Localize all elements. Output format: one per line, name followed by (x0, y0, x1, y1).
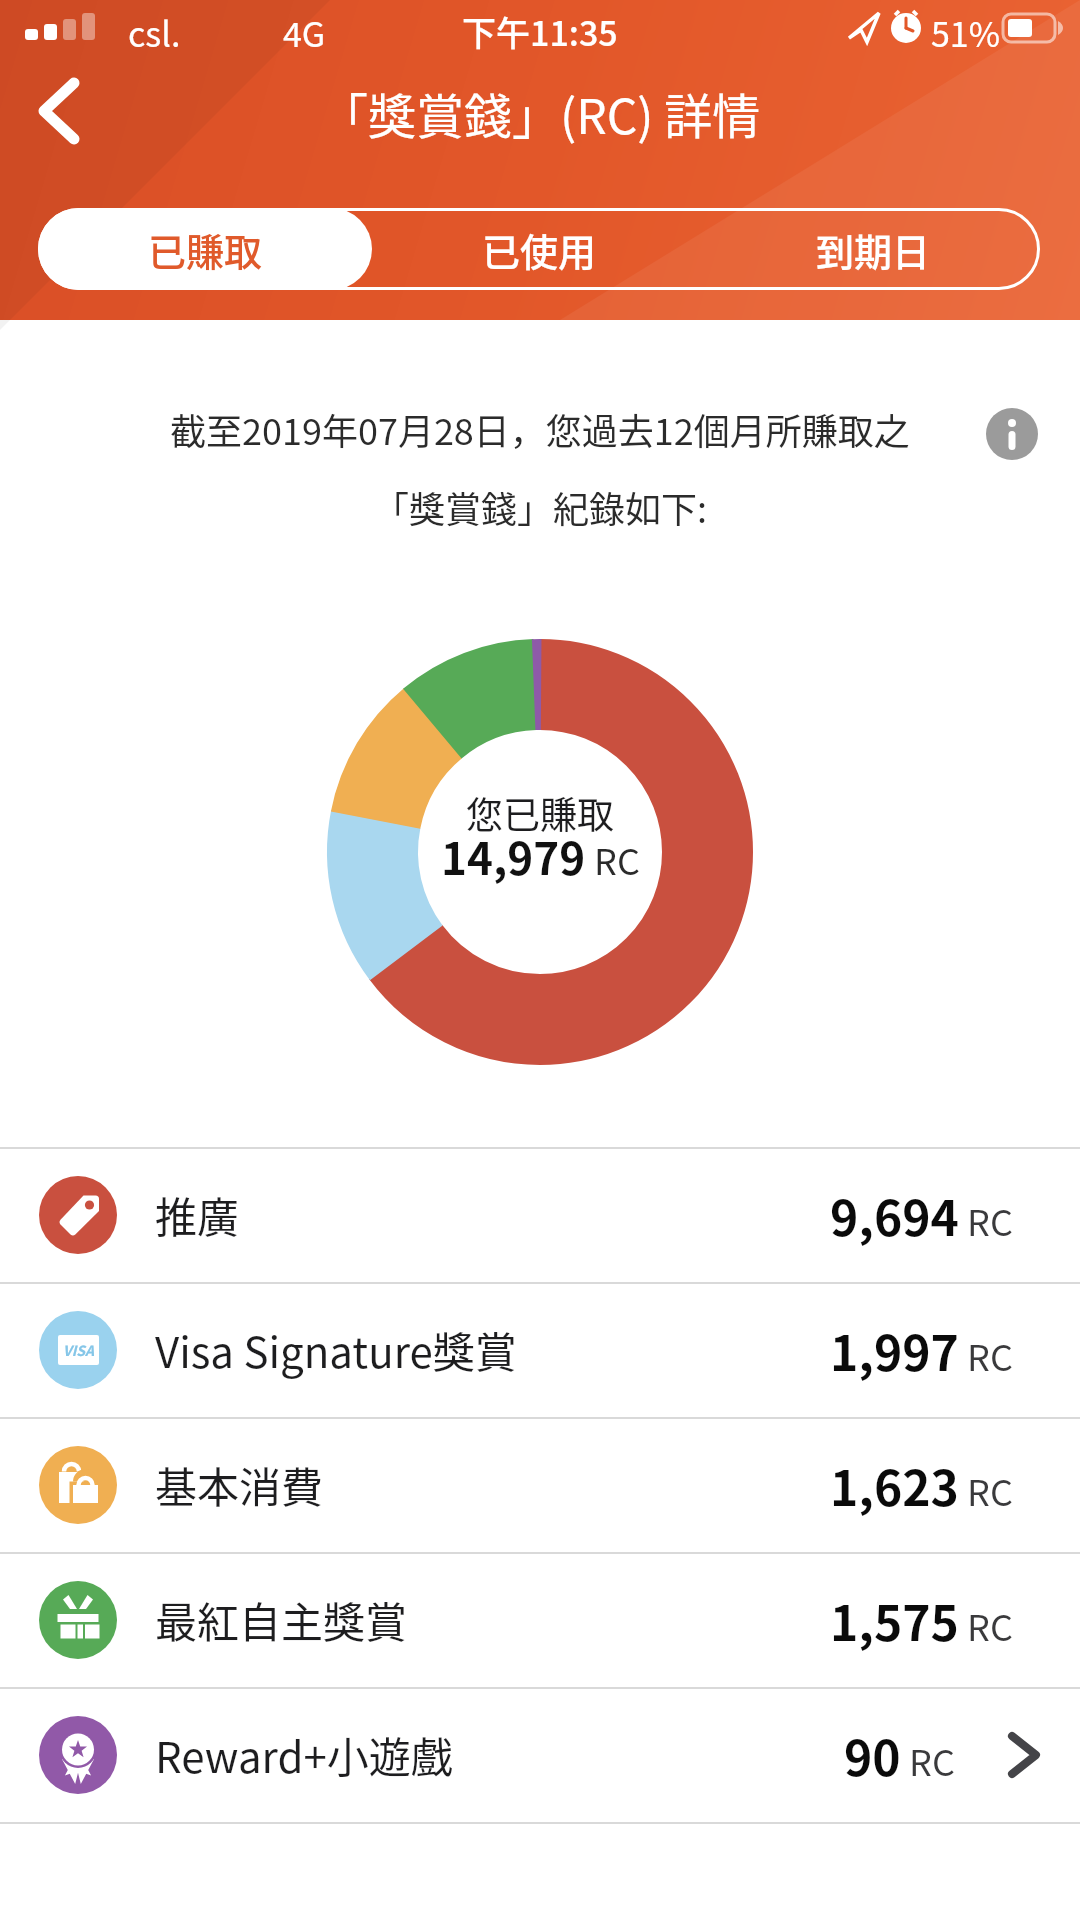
staticText: 已賺取 (148, 222, 263, 277)
staticText: RC (586, 833, 640, 885)
button[interactable]: VISA (0, 1282, 1080, 1417)
staticText: 最紅自主獎賞 (155, 1589, 408, 1650)
button[interactable] (978, 400, 1046, 468)
staticText: 4G (283, 8, 326, 57)
staticText: RC (959, 1464, 1013, 1516)
staticText: 已使用 (482, 222, 597, 277)
button[interactable]: Reward+小遊戲 (0, 1687, 1080, 1822)
staticText: csl. (128, 8, 181, 57)
button[interactable]: 最紅自主獎賞 (0, 1552, 1080, 1687)
staticText: 推廣 (155, 1184, 240, 1245)
staticText: RC (959, 1599, 1013, 1651)
button[interactable]: 基本消費 (0, 1417, 1080, 1552)
staticText: 「獎賞錢」紀錄如下: (373, 481, 708, 533)
staticText: 51% (931, 8, 1001, 57)
button[interactable]: 已賺取 (38, 208, 372, 290)
staticText: 「獎賞錢」(RC) 詳情 (320, 78, 761, 148)
staticText: 1,575 (830, 1585, 959, 1655)
staticText: RC (959, 1329, 1013, 1381)
staticText: VISA (63, 1340, 94, 1360)
staticText: RC (959, 1194, 1013, 1246)
staticText: 截至2019年07月28日，您過去12個月所賺取之 (170, 403, 910, 455)
staticText: RC (901, 1734, 955, 1786)
staticText: 基本消費 (155, 1454, 324, 1515)
staticText: Visa Signature獎賞 (155, 1319, 517, 1380)
button[interactable]: 已使用 (372, 208, 706, 290)
staticText: 14,979 (441, 824, 586, 888)
button[interactable]: 到期日 (706, 208, 1040, 290)
staticText: 到期日 (816, 222, 931, 277)
staticText: 1,623 (830, 1450, 959, 1520)
button[interactable] (20, 70, 110, 160)
staticText: 1,997 (830, 1315, 959, 1385)
staticText: 90 (844, 1720, 901, 1790)
staticText: 9,694 (830, 1180, 959, 1250)
staticText: 下午11:35 (462, 7, 618, 56)
staticText: 您已賺取 (466, 786, 614, 840)
staticText: Reward+小遊戲 (155, 1724, 453, 1785)
button[interactable]: 推廣 (0, 1147, 1080, 1282)
